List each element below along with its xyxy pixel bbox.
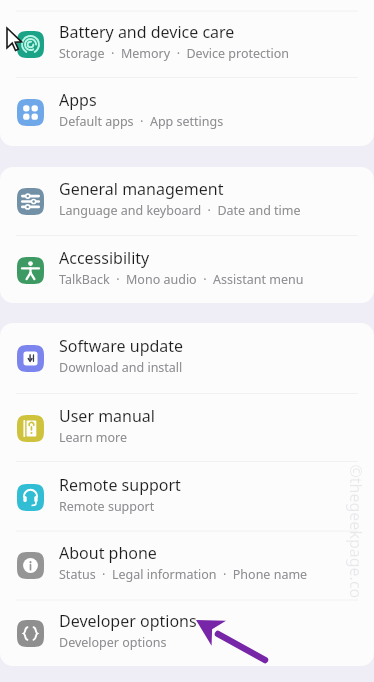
button[interactable]: About phone xyxy=(0,531,374,600)
staticText: ©thegeekpage.com xyxy=(344,464,366,609)
staticText: Remote support xyxy=(59,474,181,496)
button[interactable]: Accessibility xyxy=(0,236,374,304)
staticText: Apps xyxy=(59,89,97,111)
staticText: About phone xyxy=(59,542,157,564)
staticText: TalkBack · Mono audio · Assistant menu xyxy=(59,271,304,288)
staticText: Battery and device care xyxy=(59,21,235,43)
staticText: Default apps · App settings xyxy=(59,113,224,130)
staticText: Developer options xyxy=(59,634,167,651)
button[interactable]: Apps xyxy=(0,78,374,146)
staticText: Remote support xyxy=(59,498,155,515)
button[interactable]: Software update xyxy=(0,323,374,394)
staticText: Language and keyboard · Date and time xyxy=(59,202,301,219)
button[interactable]: Developer options xyxy=(0,600,374,666)
button[interactable]: User manual xyxy=(0,394,374,462)
staticText: General management xyxy=(59,178,224,200)
button[interactable]: Battery and device care xyxy=(0,11,374,78)
staticText: Developer options xyxy=(59,610,197,632)
staticText: Storage · Memory · Device protection xyxy=(59,45,290,62)
staticText: Status · Legal information · Phone name xyxy=(59,566,308,583)
button[interactable]: General management xyxy=(0,167,374,236)
staticText: Download and install xyxy=(59,359,183,376)
button[interactable]: Remote support xyxy=(0,462,374,532)
staticText: User manual xyxy=(59,405,155,427)
staticText: Accessibility xyxy=(59,247,150,269)
staticText: Software update xyxy=(59,335,184,357)
staticText: Learn more xyxy=(59,429,127,446)
